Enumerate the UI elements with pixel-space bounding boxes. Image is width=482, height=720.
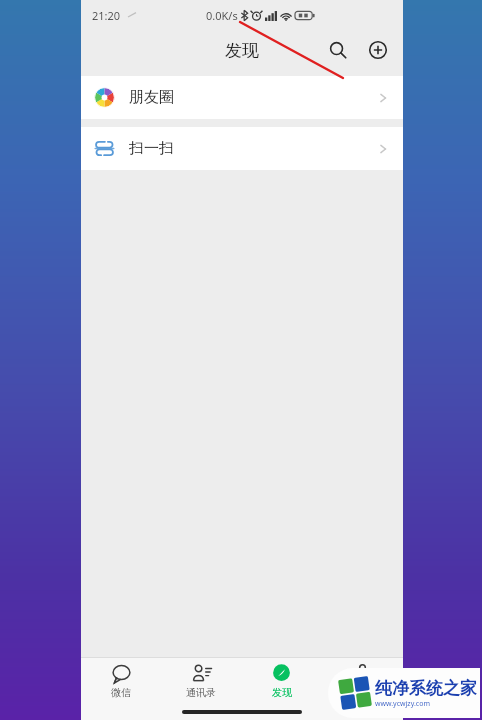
staticText: 我 [358, 686, 368, 699]
staticText: 发现 [272, 686, 292, 699]
staticText: 扫一扫 [129, 139, 174, 158]
staticText: 微信 [111, 686, 131, 699]
button[interactable]: 通讯录 [161, 658, 241, 704]
button[interactable]: 微信 [81, 658, 161, 704]
staticText: 0.0K/s [206, 8, 238, 23]
button[interactable]: 朋友圈 [81, 76, 403, 119]
staticText: 发现 [225, 40, 259, 61]
staticText: 通讯录 [186, 686, 216, 699]
button[interactable]: Search [323, 35, 353, 65]
staticText: 纯净系统之家 [375, 678, 477, 699]
staticText: 朋友圈 [129, 88, 174, 107]
button[interactable]: 扫一扫 [81, 127, 403, 170]
button[interactable]: Add [363, 35, 393, 65]
staticText: www.ycwjzy.com [375, 699, 430, 709]
button[interactable]: 我 [322, 658, 403, 704]
staticText: 21:20 [92, 8, 121, 23]
button[interactable]: 发现 [241, 658, 322, 704]
